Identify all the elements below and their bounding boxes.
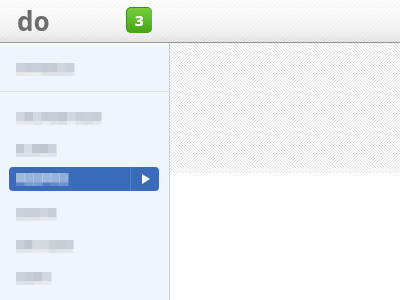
staticText: 3 [135,10,144,30]
button[interactable] [0,231,169,257]
button[interactable] [0,103,169,129]
button[interactable] [9,167,159,191]
button[interactable] [0,52,169,84]
button[interactable] [0,199,169,225]
staticText: do [17,3,50,38]
button[interactable] [0,263,169,289]
button[interactable]: 3 unread items [126,7,152,33]
button[interactable] [0,135,169,161]
